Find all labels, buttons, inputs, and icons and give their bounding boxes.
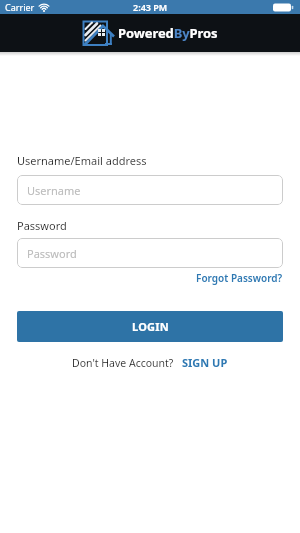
button[interactable]: SIGN UP [182,355,228,370]
staticText: Carrier [5,1,35,13]
staticText: Username/Email address [17,153,147,168]
staticText: Password [17,218,67,233]
staticText: Don't Have Account? [72,356,174,370]
staticText: Forgot Password? [196,271,283,285]
staticText: SIGN UP [182,355,228,370]
button[interactable]: Password [17,238,283,268]
staticText: Username [27,183,81,198]
staticText: 2:43 PM [133,1,168,13]
button[interactable]: LOGIN [17,311,283,342]
staticText: LOGIN [132,319,169,334]
staticText: Password [27,246,77,261]
button[interactable]: Username [17,175,283,205]
staticText: PoweredByPros [118,24,218,42]
button[interactable]: Forgot Password? [196,271,283,285]
